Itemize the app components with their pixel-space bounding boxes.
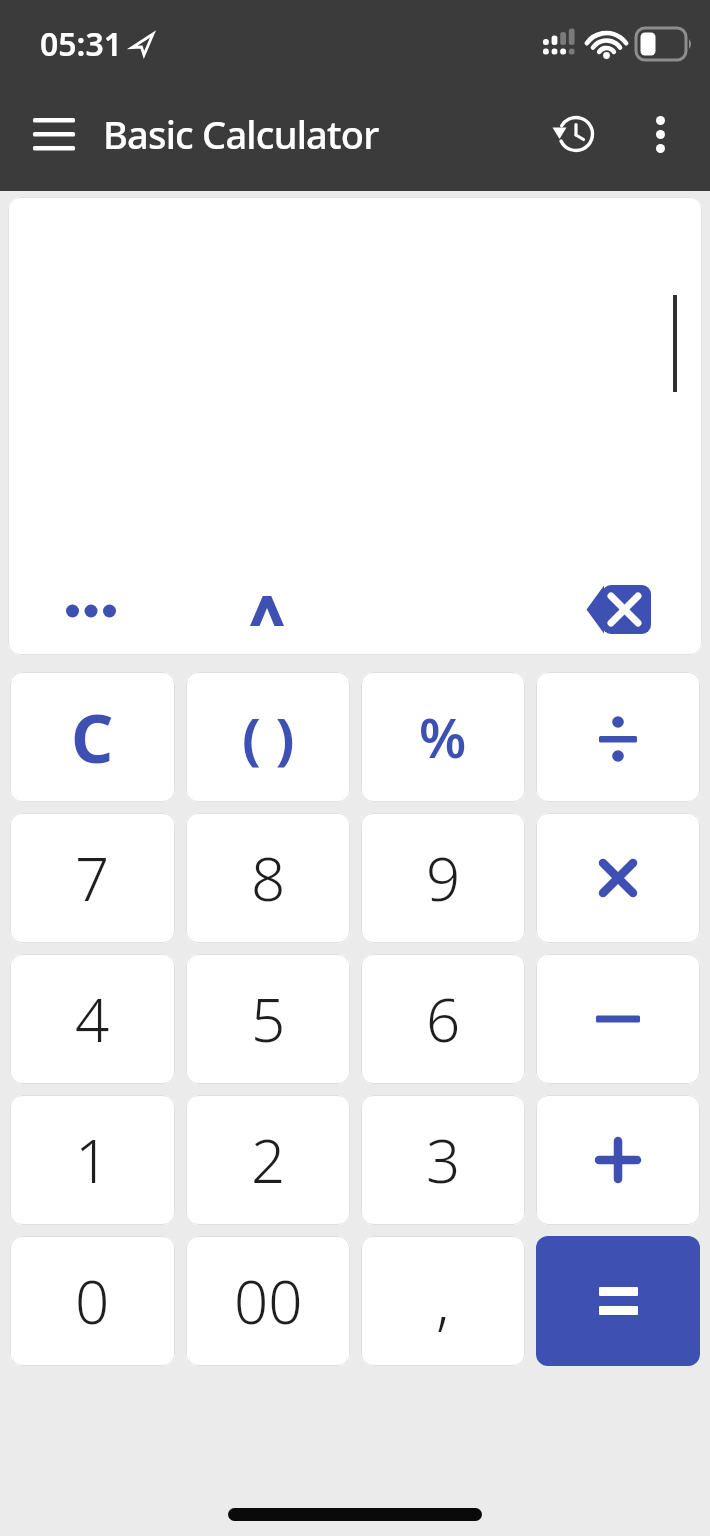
button[interactable]: 3 [361, 1095, 525, 1225]
button[interactable] [536, 813, 700, 943]
button[interactable] [642, 116, 678, 152]
staticText: 00 [234, 1260, 303, 1342]
button[interactable]: 2 [186, 1095, 350, 1225]
button[interactable]: 0 [10, 1236, 175, 1366]
staticText: 05:31 [40, 22, 123, 66]
staticText: 6 [426, 978, 461, 1060]
button[interactable]: 00 [186, 1236, 350, 1366]
button[interactable] [536, 1236, 700, 1366]
staticText: 1 [75, 1119, 110, 1201]
button[interactable] [30, 110, 78, 158]
button[interactable] [536, 672, 700, 802]
button[interactable]: 8 [186, 813, 350, 943]
staticText: Basic Calculator [103, 108, 379, 160]
staticText: ( ) [242, 699, 295, 775]
staticText: 4 [75, 978, 110, 1060]
button[interactable] [58, 595, 124, 627]
button[interactable]: 6 [361, 954, 525, 1084]
button[interactable]: 5 [186, 954, 350, 1084]
staticText: 3 [426, 1119, 461, 1201]
button[interactable] [242, 587, 292, 635]
button[interactable]: 4 [10, 954, 175, 1084]
staticText: 9 [426, 837, 461, 919]
button[interactable] [577, 577, 659, 642]
button[interactable]: ( ) [186, 672, 350, 802]
button[interactable]: % [361, 672, 525, 802]
button[interactable] [536, 954, 700, 1084]
button[interactable]: 1 [10, 1095, 175, 1225]
staticText: % [419, 700, 467, 774]
staticText: 2 [251, 1119, 286, 1201]
staticText: 5 [251, 978, 286, 1060]
staticText: , [436, 1260, 450, 1342]
button[interactable]: , [361, 1236, 525, 1366]
button[interactable] [536, 1095, 700, 1225]
staticText: 0 [75, 1260, 110, 1342]
button[interactable]: 9 [361, 813, 525, 943]
button[interactable] [550, 110, 598, 158]
button[interactable]: C [10, 672, 175, 802]
staticText: C [71, 692, 114, 782]
button[interactable]: 7 [10, 813, 175, 943]
staticText: 8 [251, 837, 286, 919]
staticText: 7 [75, 837, 110, 919]
